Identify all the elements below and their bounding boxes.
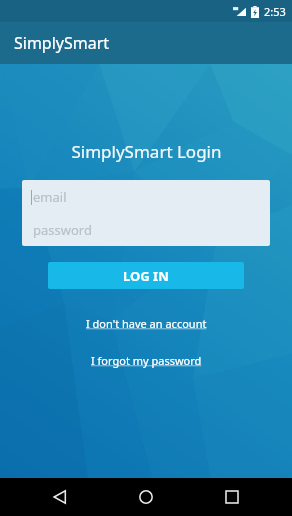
button[interactable]: LOG IN: [48, 262, 244, 289]
staticText: email: [33, 188, 67, 206]
staticText: 2:53: [264, 4, 286, 19]
staticText: LOG IN: [123, 267, 169, 285]
staticText: SimplySmart: [14, 32, 110, 54]
button[interactable]: password: [22, 213, 270, 246]
button[interactable]: Recent apps: [206, 478, 258, 516]
button[interactable]: email: [22, 180, 270, 213]
button[interactable]: Back: [34, 478, 86, 516]
button[interactable]: I forgot my password: [85, 350, 208, 371]
staticText: SimplySmart Login: [71, 140, 222, 163]
button[interactable]: I don't have an account: [80, 313, 213, 334]
staticText: I don't have an account: [86, 316, 207, 331]
staticText: I forgot my password: [91, 353, 202, 368]
staticText: password: [33, 221, 92, 239]
button[interactable]: Home: [120, 478, 172, 516]
